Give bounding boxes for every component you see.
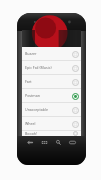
staticText: Postman <box>25 93 71 98</box>
button[interactable]: Wheel <box>22 117 81 130</box>
button[interactable]: Wheel <box>71 120 79 128</box>
staticText: Buzzer <box>25 51 71 56</box>
staticText: Fart <box>25 79 71 84</box>
staticText: Wheel <box>25 121 71 126</box>
button[interactable]: Home <box>67 137 78 148</box>
button[interactable]: Boooh! <box>22 131 81 136</box>
button[interactable]: Back <box>25 137 36 148</box>
button[interactable]: Unacceptable <box>71 106 79 114</box>
button[interactable]: Epic Fail (Music) <box>71 64 79 72</box>
button[interactable]: Postman selected <box>71 92 79 100</box>
button[interactable]: Fart <box>71 78 79 86</box>
button[interactable]: Unacceptable <box>22 103 81 116</box>
button[interactable]: Buzzer <box>71 50 79 58</box>
button[interactable]: Search <box>53 137 64 148</box>
button[interactable]: Epic Fail (Music) <box>22 61 81 74</box>
button[interactable]: Postman <box>22 89 81 102</box>
staticText: Epic Fail (Music) <box>25 65 71 70</box>
button[interactable]: Fart <box>22 75 81 88</box>
button[interactable]: Buzzer <box>22 47 81 60</box>
staticText: Unacceptable <box>25 107 71 112</box>
button[interactable]: Menu <box>39 137 50 148</box>
button[interactable]: Boooh! <box>71 131 79 136</box>
staticText: Boooh! <box>25 131 71 136</box>
